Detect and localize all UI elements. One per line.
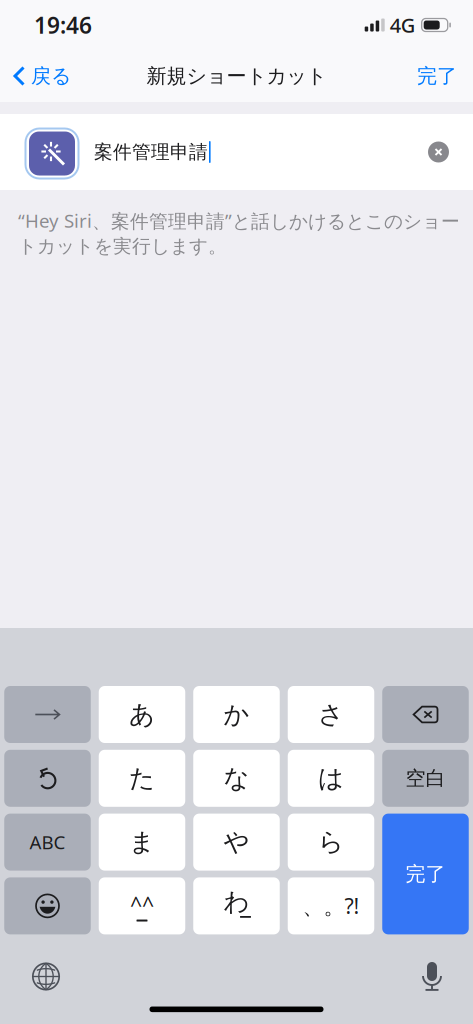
staticText: ら	[318, 826, 344, 858]
staticText: 新規ショートカット	[146, 64, 326, 88]
staticText: さ	[318, 699, 344, 730]
staticText: 完了	[405, 862, 445, 886]
button[interactable]: さ	[288, 686, 374, 743]
button[interactable]: た	[99, 750, 185, 807]
staticText: な	[223, 763, 249, 794]
staticText: 戻る	[31, 64, 71, 88]
button[interactable]: Emoji	[4, 877, 91, 934]
button[interactable]: あ	[99, 686, 185, 743]
button[interactable]: わ	[193, 877, 280, 934]
staticText: 空白	[405, 766, 445, 791]
button[interactable]: Next candidate	[4, 686, 91, 743]
staticText: た	[129, 763, 155, 794]
staticText: ^^	[130, 890, 154, 918]
staticText: 19:46	[34, 10, 92, 40]
staticText: 4G	[390, 12, 416, 38]
button[interactable]: ま	[99, 814, 185, 871]
button[interactable]: ら	[288, 814, 374, 871]
staticText: 案件管理申請	[94, 140, 208, 163]
button[interactable]: Undo	[4, 750, 91, 807]
button[interactable]: Delete	[382, 686, 469, 743]
button[interactable]: ABC	[4, 814, 91, 871]
staticText: や	[223, 826, 249, 858]
button[interactable]: Dictate	[399, 936, 473, 1003]
staticText: トカットを実行します。	[18, 235, 227, 258]
button[interactable]: 完了	[382, 814, 469, 934]
button[interactable]: Switch keyboard	[0, 936, 80, 1003]
button[interactable]: や	[193, 814, 280, 871]
staticText: ABC	[29, 830, 65, 854]
staticText: わ	[223, 886, 249, 917]
button[interactable]: 戻る	[0, 54, 79, 98]
button[interactable]: な	[193, 750, 280, 807]
button[interactable]: ^^	[99, 877, 185, 934]
button[interactable]: は	[288, 750, 374, 807]
staticText: は	[318, 763, 344, 794]
staticText: 完了	[417, 64, 457, 88]
button[interactable]: 、。?!	[288, 877, 374, 934]
button[interactable]: Clear text	[414, 126, 473, 178]
button[interactable]: 完了	[407, 54, 473, 98]
button[interactable]: か	[193, 686, 280, 743]
staticText: か	[223, 699, 249, 730]
staticText: あ	[129, 699, 155, 730]
staticText: “Hey Siri、案件管理申請”と話しかけるとこのショー	[18, 208, 460, 233]
button[interactable]: 空白	[382, 750, 469, 807]
staticText: 、。?!	[302, 892, 359, 920]
staticText: ま	[129, 826, 155, 858]
